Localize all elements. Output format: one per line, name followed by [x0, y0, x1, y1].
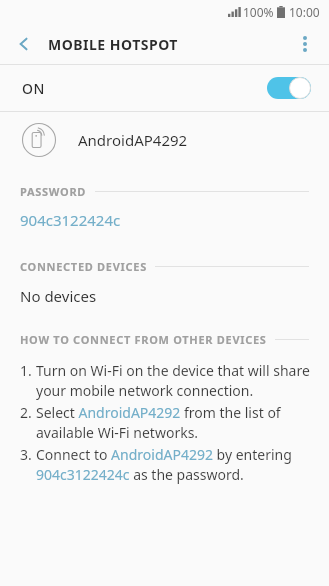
staticText: ON [22, 79, 45, 98]
button[interactable]: Back [8, 28, 40, 60]
staticText: 10:00 [289, 4, 320, 20]
staticText: Connect to AndroidAP4292 by entering 904… [36, 445, 311, 485]
staticText: 2. [20, 403, 36, 422]
staticText: 1. [20, 361, 36, 380]
staticText: 100% [243, 4, 274, 20]
button[interactable]: ON [0, 65, 329, 111]
staticText: HOW TO CONNECT FROM OTHER DEVICES [20, 332, 267, 347]
button[interactable]: More options [289, 28, 321, 60]
staticText: 904c3122424c [20, 210, 121, 230]
staticText: 3. [20, 445, 36, 464]
staticText: CONNECTED DEVICES [20, 259, 147, 274]
staticText: PASSWORD [20, 184, 87, 199]
staticText: MOBILE HOTSPOT [48, 35, 178, 54]
staticText: Select AndroidAP4292 from the list of av… [36, 403, 311, 443]
staticText: Turn on Wi-Fi on the device that will sh… [36, 361, 311, 401]
button[interactable]: AndroidAP4292 [0, 112, 329, 168]
staticText: No devices [20, 286, 97, 306]
staticText: AndroidAP4292 [78, 130, 188, 150]
button[interactable]: Hotspot toggle [267, 77, 311, 99]
